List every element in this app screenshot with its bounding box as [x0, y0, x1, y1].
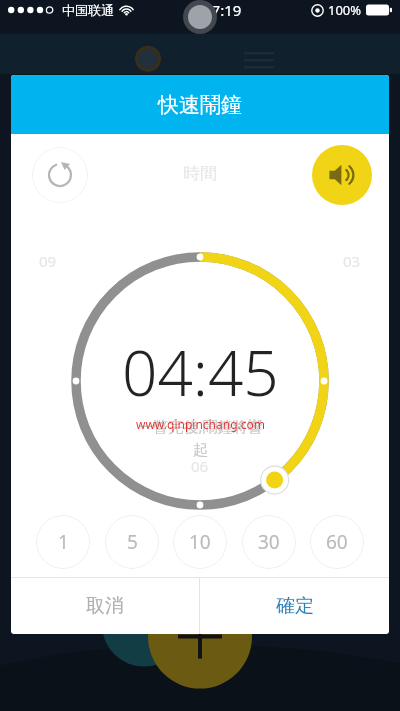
- staticText: 17:19: [203, 0, 242, 20]
- staticText: 03: [343, 251, 361, 271]
- staticText: 一瞥完後,鬧鐘將響 起: [138, 416, 263, 459]
- button[interactable]: 取消: [11, 578, 199, 634]
- button[interactable]: 確定: [200, 578, 389, 634]
- button[interactable]: Reset: [32, 147, 88, 203]
- staticText: 30: [258, 529, 280, 555]
- staticText: 10: [189, 529, 211, 555]
- staticText: www.qinpinchang.com: [136, 416, 265, 432]
- staticText: 04:45: [122, 330, 279, 414]
- button[interactable]: 5: [105, 515, 159, 569]
- staticText: 5: [127, 529, 138, 555]
- staticText: 09: [39, 251, 57, 271]
- staticText: 中国联通: [62, 2, 114, 18]
- staticText: 60: [326, 529, 348, 555]
- staticText: 快速鬧鐘: [158, 92, 242, 118]
- button[interactable]: Sound: [312, 145, 372, 205]
- staticText: 06: [191, 456, 209, 476]
- staticText: 1: [58, 529, 69, 555]
- button[interactable]: 10: [173, 515, 227, 569]
- button[interactable]: 30: [242, 515, 296, 569]
- staticText: 取消: [86, 594, 124, 618]
- staticText: 時間: [183, 163, 217, 184]
- button[interactable]: 1: [36, 515, 90, 569]
- button[interactable]: 60: [310, 515, 364, 569]
- staticText: 100%: [328, 1, 362, 19]
- staticText: 確定: [276, 594, 314, 618]
